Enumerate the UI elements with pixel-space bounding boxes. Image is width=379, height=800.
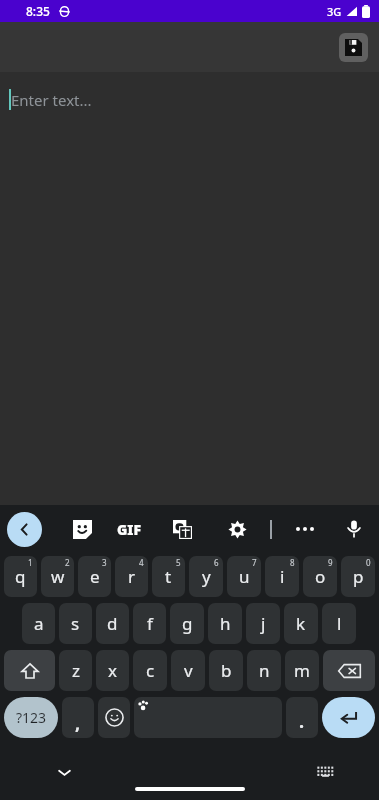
staticText: g: [182, 612, 193, 635]
button[interactable]: z: [59, 650, 92, 691]
staticText: ,: [75, 711, 81, 736]
staticText: 4: [139, 557, 144, 568]
staticText: r: [128, 565, 136, 588]
button[interactable]: GIF: [110, 510, 148, 548]
staticText: e: [90, 565, 100, 588]
staticText: 5: [176, 557, 181, 568]
staticText: t: [165, 565, 172, 588]
button[interactable]: i: [265, 556, 299, 597]
staticText: 8: [290, 557, 295, 568]
staticText: m: [294, 659, 310, 682]
staticText: 2: [65, 557, 70, 568]
button[interactable]: Space: [134, 697, 282, 738]
staticText: z: [72, 659, 80, 682]
staticText: i: [280, 565, 285, 588]
button[interactable]: Emoji: [98, 697, 130, 738]
staticText: s: [71, 612, 80, 635]
staticText: b: [221, 659, 232, 682]
button[interactable]: Hide keyboard: [46, 754, 82, 790]
button[interactable]: d: [96, 603, 129, 644]
button[interactable]: ?123: [4, 697, 58, 738]
staticText: d: [107, 612, 118, 635]
staticText: .: [299, 709, 305, 734]
button[interactable]: Translate: [163, 510, 201, 548]
staticText: h: [220, 612, 231, 635]
staticText: Enter text...: [11, 90, 92, 110]
button[interactable]: h: [208, 603, 242, 644]
staticText: GIF: [117, 520, 142, 539]
staticText: v: [184, 659, 193, 682]
staticText: j: [261, 612, 266, 635]
staticText: c: [146, 659, 155, 682]
button[interactable]: f: [133, 603, 166, 644]
staticText: 1: [28, 557, 33, 568]
button[interactable]: Enter: [322, 697, 375, 738]
staticText: q: [15, 565, 26, 588]
button[interactable]: w: [41, 556, 74, 597]
staticText: 3: [102, 557, 107, 568]
button[interactable]: s: [59, 603, 92, 644]
button[interactable]: m: [285, 650, 319, 691]
button[interactable]: c: [133, 650, 167, 691]
button[interactable]: l: [322, 603, 356, 644]
staticText: o: [315, 565, 326, 588]
staticText: 3G: [327, 4, 342, 19]
button[interactable]: Period: [286, 697, 318, 738]
button[interactable]: n: [247, 650, 281, 691]
button[interactable]: Back: [7, 512, 42, 547]
staticText: 8:35: [26, 3, 50, 19]
staticText: n: [259, 659, 270, 682]
button[interactable]: Voice input: [335, 510, 373, 548]
button[interactable]: Shift: [4, 650, 55, 691]
button[interactable]: k: [284, 603, 318, 644]
button[interactable]: More options: [286, 510, 324, 548]
button[interactable]: j: [246, 603, 280, 644]
staticText: y: [202, 565, 211, 588]
staticText: a: [34, 612, 44, 635]
staticText: 7: [252, 557, 257, 568]
staticText: l: [337, 612, 342, 635]
staticText: ?123: [16, 708, 47, 727]
button[interactable]: a: [22, 603, 55, 644]
staticText: 6: [214, 557, 219, 568]
button[interactable]: r: [115, 556, 148, 597]
staticText: p: [353, 565, 364, 588]
button[interactable]: v: [171, 650, 205, 691]
staticText: u: [239, 565, 250, 588]
button[interactable]: Comma: [62, 697, 94, 738]
staticText: k: [296, 612, 306, 635]
staticText: x: [108, 659, 117, 682]
button[interactable]: Settings: [218, 510, 256, 548]
button[interactable]: e: [78, 556, 111, 597]
staticText: w: [51, 565, 65, 588]
button[interactable]: x: [96, 650, 129, 691]
button[interactable]: Backspace: [323, 650, 375, 691]
button[interactable]: Stickers: [63, 510, 101, 548]
button[interactable]: y: [189, 556, 223, 597]
button[interactable]: p: [341, 556, 375, 597]
button[interactable]: q: [4, 556, 37, 597]
button[interactable]: b: [209, 650, 243, 691]
staticText: 9: [328, 557, 333, 568]
button[interactable]: u: [227, 556, 261, 597]
staticText: 0: [366, 557, 371, 568]
button[interactable]: o: [303, 556, 337, 597]
button[interactable]: Switch keyboard: [307, 754, 343, 790]
button[interactable]: g: [170, 603, 204, 644]
button[interactable]: t: [152, 556, 185, 597]
staticText: f: [147, 612, 153, 635]
button[interactable]: Save: [339, 33, 368, 62]
